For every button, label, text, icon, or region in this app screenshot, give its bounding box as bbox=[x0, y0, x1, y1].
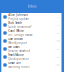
staticText: 8:30 bbox=[56, 32, 59, 34]
button[interactable]: Dan Brown bbox=[1, 37, 61, 45]
staticText: 9:12 bbox=[56, 24, 59, 26]
staticText: Carol White bbox=[8, 29, 24, 33]
staticText: Inbox bbox=[28, 5, 36, 8]
staticText: Project update bbox=[8, 17, 29, 21]
staticText: Weekly report bbox=[8, 41, 27, 45]
staticText: Quick question bbox=[8, 57, 29, 61]
button[interactable]: Grace Lee bbox=[1, 61, 61, 69]
staticText: Grace Lee bbox=[8, 61, 21, 65]
staticText: Yest bbox=[56, 40, 59, 42]
staticText: Mon bbox=[56, 56, 59, 58]
button[interactable]: Alice Johnson bbox=[1, 13, 61, 21]
staticText: Bob Smith bbox=[8, 21, 22, 25]
staticText: Eve Davis bbox=[8, 45, 19, 49]
staticText: Invoice attached bbox=[8, 49, 30, 53]
button[interactable]: Carol White bbox=[1, 29, 61, 37]
button[interactable]: Frank Moore bbox=[1, 53, 61, 61]
staticText: 9:41 bbox=[56, 16, 59, 18]
staticText: Meeting notes bbox=[8, 65, 29, 69]
button[interactable]: Bob Smith bbox=[1, 21, 61, 29]
staticText: Frank Moore bbox=[8, 53, 24, 57]
staticText: Sun bbox=[56, 64, 59, 66]
staticText: Re: Design review bbox=[8, 33, 32, 37]
staticText: Lunch tomorrow? bbox=[8, 25, 31, 29]
staticText: Dan Brown bbox=[8, 37, 23, 41]
staticText: Alice Johnson bbox=[8, 13, 28, 17]
staticText: Mon bbox=[56, 48, 59, 50]
button[interactable]: Eve Davis bbox=[1, 45, 61, 53]
